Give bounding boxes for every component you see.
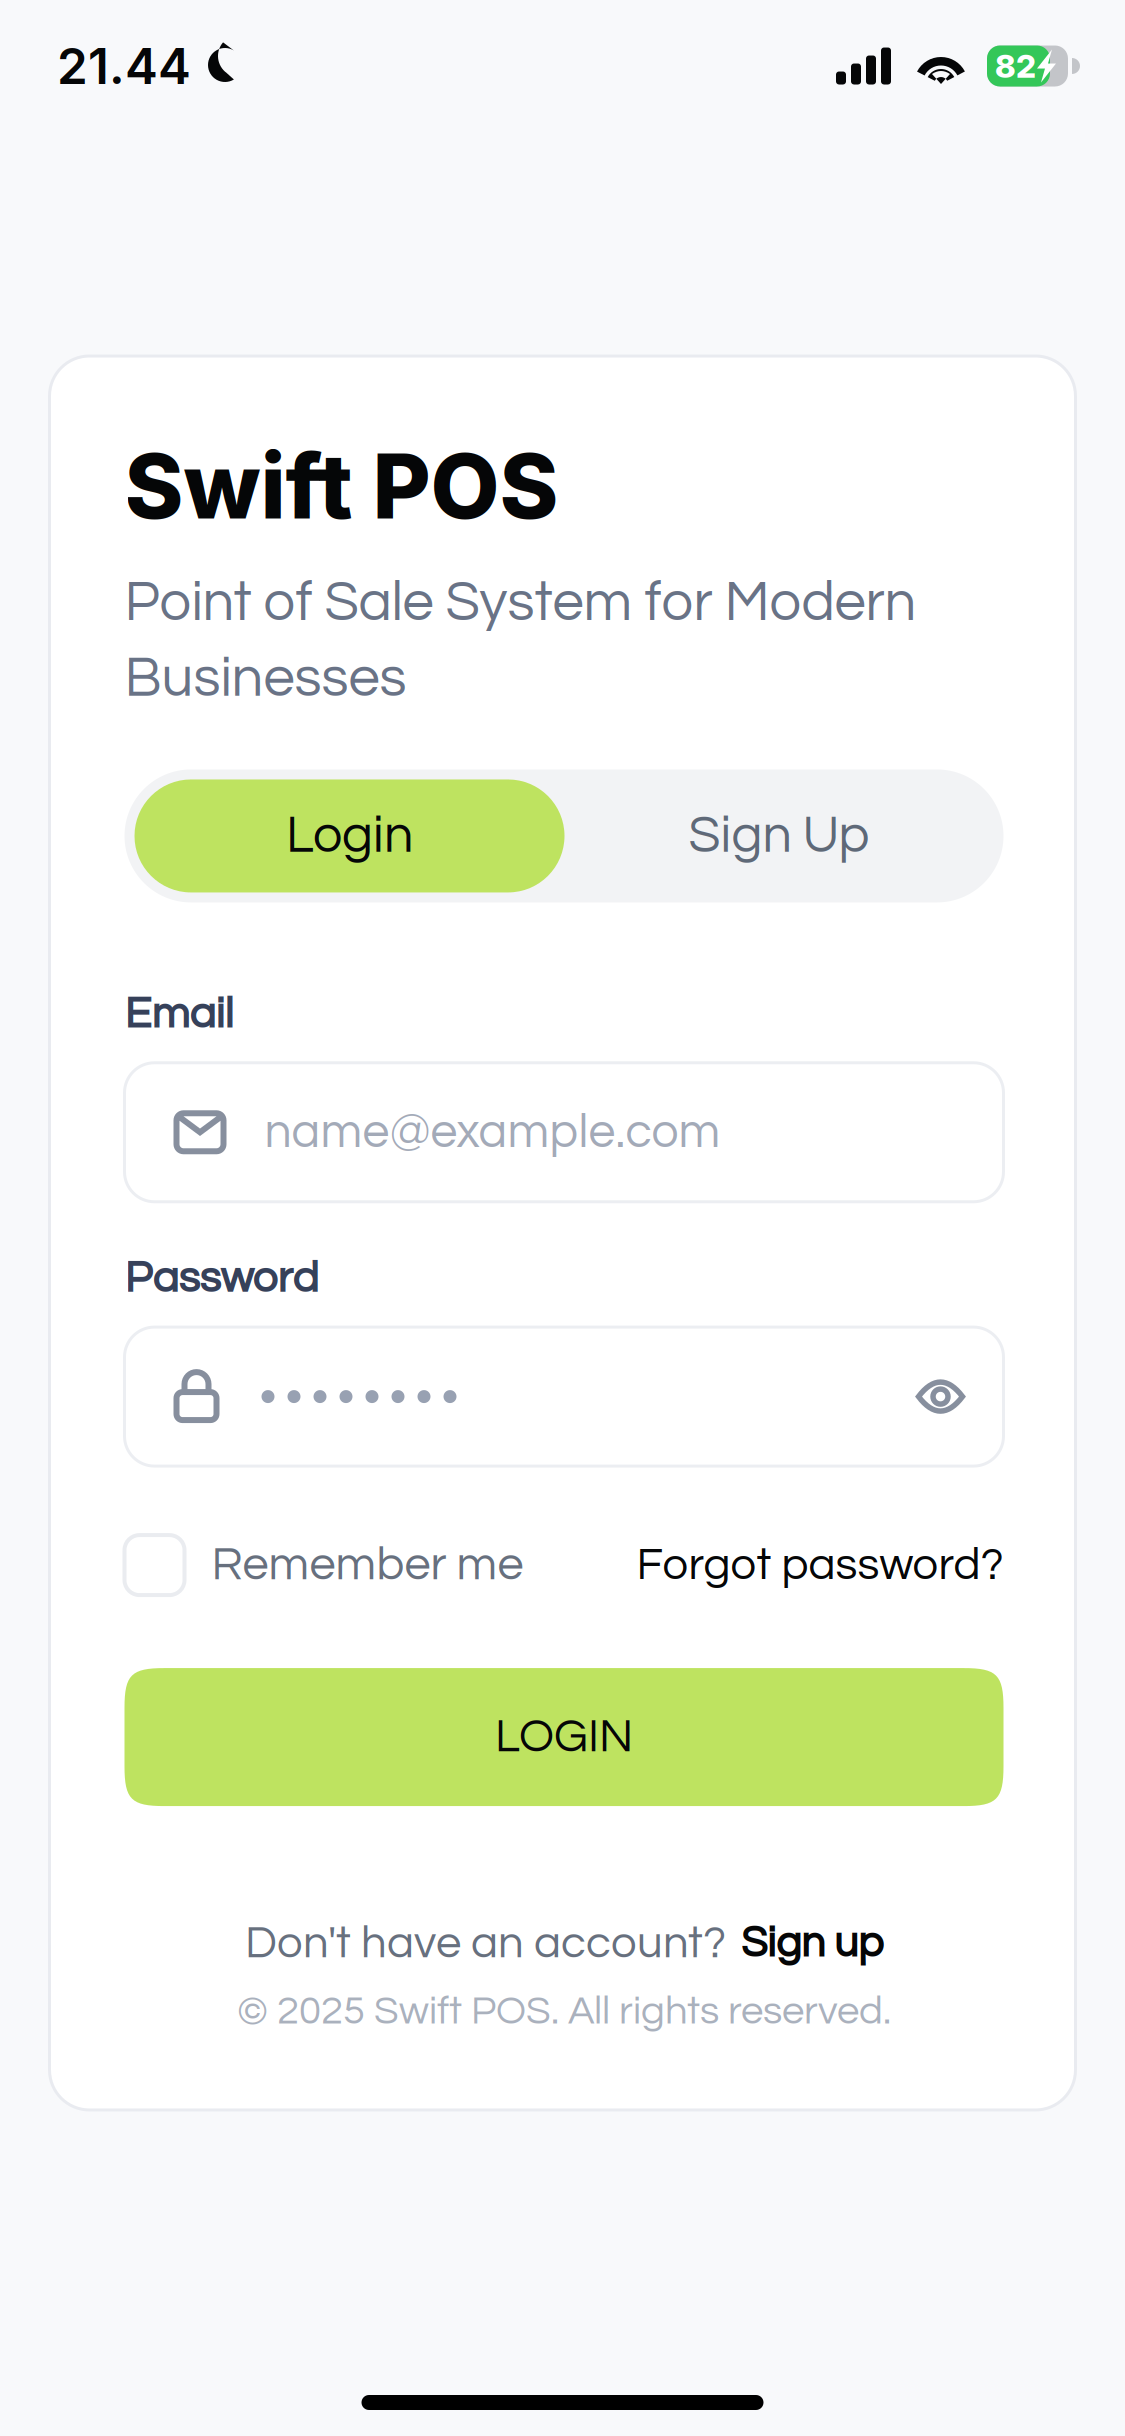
button[interactable]: Sign up bbox=[741, 1921, 883, 1965]
staticText: Forgot password? bbox=[636, 1542, 1003, 1588]
staticText: Businesses bbox=[124, 650, 406, 707]
staticText: Don't have an account? bbox=[245, 1920, 726, 1967]
staticText: Remember me bbox=[211, 1541, 523, 1589]
staticText: Swift POS bbox=[124, 432, 558, 540]
button[interactable]: Sign Up bbox=[564, 779, 993, 892]
staticText: © 2025 Swift POS. All rights reserved. bbox=[237, 1991, 891, 2032]
button[interactable]: Login bbox=[134, 779, 564, 892]
staticText: 21.44 bbox=[57, 36, 191, 96]
button[interactable]: LOGIN bbox=[124, 1668, 1003, 1806]
staticText: Point of Sale System for Modern bbox=[124, 574, 916, 632]
button[interactable]: Remember me bbox=[124, 1535, 523, 1595]
staticText: Sign Up bbox=[688, 809, 869, 863]
staticText: name@example.com bbox=[264, 1107, 720, 1157]
staticText: Email bbox=[124, 991, 233, 1037]
staticText: 82 bbox=[995, 47, 1036, 85]
staticText: Sign up bbox=[741, 1921, 883, 1965]
staticText: LOGIN bbox=[495, 1713, 633, 1761]
staticText: Login bbox=[286, 809, 413, 863]
button[interactable]: Forgot password? bbox=[636, 1542, 1003, 1588]
staticText: Password bbox=[124, 1256, 318, 1301]
button[interactable]: Show password bbox=[915, 1378, 965, 1416]
